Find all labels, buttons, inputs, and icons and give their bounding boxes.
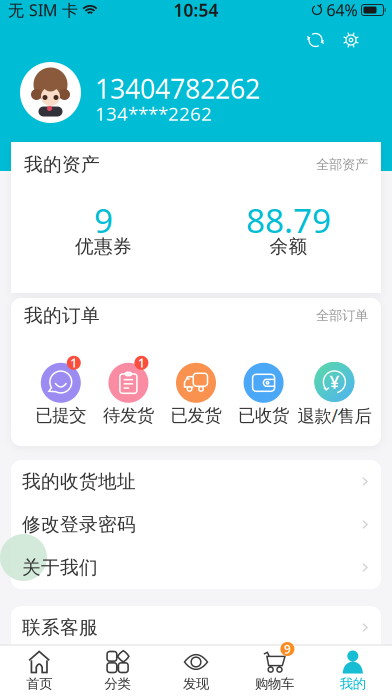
staticText: 我的资产 [24,153,100,176]
staticText: 发现 [183,675,209,692]
button[interactable]: 首页 [0,650,78,692]
button[interactable]: 1 [95,363,162,426]
button[interactable]: 88.79 [196,205,381,258]
staticText: 待发货 [103,405,154,426]
button[interactable]: 已发货 [162,363,230,426]
staticText: ¥ [329,370,339,393]
staticText: 已发货 [170,405,221,426]
button[interactable]: 9 [11,205,196,258]
staticText: 我的订单 [24,304,100,327]
button[interactable]: 9 [235,650,314,692]
staticText: 我的 [340,675,366,692]
button[interactable]: 刷新 [308,32,323,47]
staticText: 9 [284,641,291,657]
button[interactable]: 1 [27,363,95,426]
staticText: 无 SIM 卡 [8,0,78,21]
staticText: 1 [70,355,77,371]
staticText: 首页 [26,675,52,692]
staticText: 我的收货地址 [22,470,136,493]
staticText: 优惠券 [75,235,132,258]
button[interactable]: 头像 [20,62,81,123]
button[interactable]: 我的收货地址 [11,460,381,503]
button[interactable]: 联系客服 [11,606,381,649]
button[interactable]: ¥ [297,362,365,427]
staticText: 64% [326,0,357,21]
staticText: 退款/售后 [297,404,371,427]
button[interactable]: 全部订单 [316,307,368,324]
staticText: 已提交 [35,405,86,426]
staticText: 已收货 [238,405,289,426]
button[interactable]: 已收货 [230,363,297,426]
button[interactable]: 我的 [314,650,392,692]
button[interactable]: 全部资产 [316,156,368,173]
staticText: 关于我们 [22,556,98,579]
staticText: 13404782262 [95,71,260,106]
button[interactable]: 分类 [78,650,157,692]
staticText: 134****2262 [95,101,212,126]
staticText: 余额 [269,235,307,258]
staticText: 1 [138,355,145,371]
staticText: 9 [94,198,113,242]
staticText: 修改登录密码 [22,513,136,536]
staticText: 全部订单 [316,307,368,324]
staticText: 全部资产 [316,156,368,173]
staticText: 分类 [105,675,131,692]
staticText: 联系客服 [22,616,98,639]
button[interactable]: 设置 [343,32,359,48]
button[interactable]: 发现 [157,650,235,692]
button[interactable]: 关于我们 [11,546,381,589]
staticText: 88.79 [246,198,331,242]
staticText: 10:54 [173,0,218,21]
staticText: 购物车 [255,675,294,692]
button[interactable]: 修改登录密码 [11,503,381,546]
